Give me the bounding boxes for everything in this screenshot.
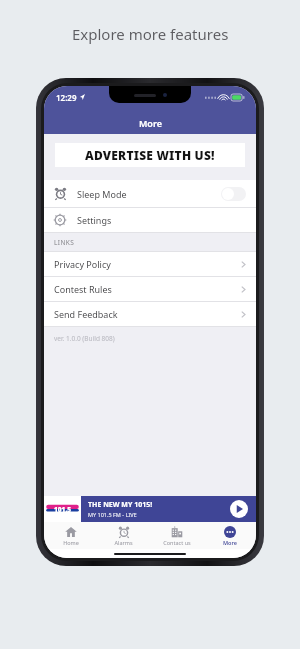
staticText: More [223, 539, 237, 546]
button[interactable]: Contest Rules [44, 277, 256, 301]
button[interactable]: More [203, 522, 256, 549]
button[interactable]: Sleep Mode [44, 180, 256, 207]
staticText: MY 101.5 FM - LIVE [88, 511, 137, 518]
staticText: Contest Rules [54, 283, 112, 295]
staticText: Privacy Policy [54, 258, 111, 270]
staticText: More [139, 117, 162, 129]
button[interactable]: Settings [44, 208, 256, 232]
staticText: Explore more features [72, 24, 229, 44]
staticText: Home [63, 539, 79, 546]
staticText: LINKS [54, 238, 75, 247]
button[interactable]: Alarms [97, 522, 150, 549]
staticText: THE NEW MY 1015! [88, 500, 153, 510]
staticText: 12:29 [56, 92, 77, 103]
button[interactable]: Privacy Policy [44, 252, 256, 276]
staticText: ver. 1.0.0 (Build 808) [54, 334, 115, 343]
button[interactable]: Send Feedback [44, 302, 256, 326]
staticText: ADVERTISE WITH US! [85, 147, 215, 163]
button[interactable]: Sleep Mode toggle [221, 187, 246, 201]
staticText: Alarms [114, 539, 133, 546]
staticText: 101.5 [54, 505, 72, 514]
button[interactable]: 101.5 [44, 496, 256, 522]
staticText: Contact us [163, 539, 191, 546]
staticText: Sleep Mode [77, 188, 127, 200]
button[interactable]: ADVERTISE WITH US! [55, 143, 245, 167]
staticText: Settings [77, 214, 112, 226]
button[interactable]: Contact us [150, 522, 203, 549]
staticText: Send Feedback [54, 308, 118, 320]
button[interactable]: Home [44, 522, 97, 549]
button[interactable]: Play [230, 500, 248, 518]
